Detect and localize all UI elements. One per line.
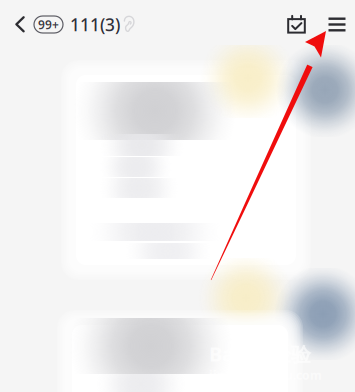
staticText: Baidu 经验	[209, 340, 311, 367]
staticText: 111(3)	[70, 13, 120, 36]
button[interactable]: Menu	[323, 0, 351, 45]
button[interactable]: Back	[6, 0, 34, 45]
staticText: 99+	[38, 16, 59, 32]
staticText: jingyan.baidu.com	[209, 367, 322, 383]
button[interactable]: Schedule	[270, 0, 323, 45]
